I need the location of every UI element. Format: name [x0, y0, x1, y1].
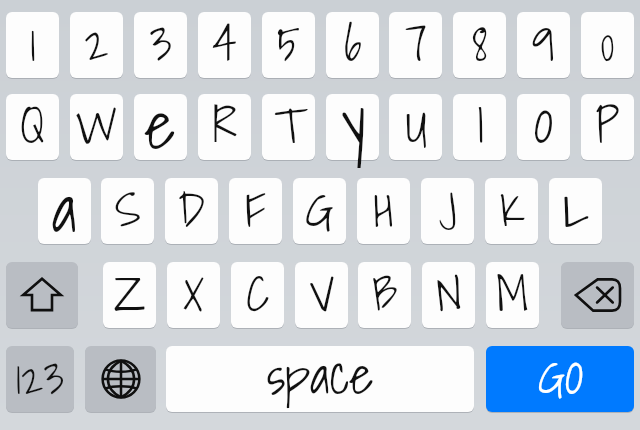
- button[interactable]: [6, 12, 59, 78]
- button[interactable]: [198, 94, 251, 160]
- staticText: R: [212, 87, 237, 164]
- button[interactable]: [326, 12, 379, 78]
- staticText: 5: [277, 5, 300, 82]
- button[interactable]: [70, 94, 123, 160]
- staticText: S: [115, 171, 141, 248]
- staticText: I: [476, 87, 484, 164]
- staticText: K: [499, 171, 525, 248]
- staticText: Q: [20, 87, 45, 164]
- button[interactable]: Delete: [561, 262, 634, 328]
- staticText: 1: [30, 5, 36, 82]
- button[interactable]: Shift: [6, 262, 78, 328]
- button[interactable]: [293, 178, 346, 244]
- button[interactable]: [134, 94, 187, 160]
- staticText: X: [182, 255, 205, 332]
- button[interactable]: [486, 346, 634, 412]
- staticText: F: [245, 171, 266, 248]
- button[interactable]: [422, 262, 475, 328]
- button[interactable]: [453, 12, 506, 78]
- button[interactable]: [549, 178, 602, 244]
- staticText: y: [341, 65, 365, 171]
- staticText: Z: [113, 255, 146, 332]
- button[interactable]: [167, 262, 220, 328]
- button[interactable]: [231, 262, 284, 328]
- button[interactable]: [38, 178, 91, 244]
- staticText: 2: [84, 5, 109, 82]
- staticText: 6: [344, 5, 362, 82]
- staticText: 123: [16, 342, 64, 413]
- staticText: 7: [405, 5, 427, 82]
- staticText: U: [405, 87, 427, 164]
- button[interactable]: [6, 94, 59, 160]
- staticText: 8: [472, 5, 488, 82]
- button[interactable]: [357, 178, 410, 244]
- button[interactable]: [517, 12, 570, 78]
- staticText: J: [439, 171, 457, 248]
- staticText: a: [52, 155, 77, 261]
- button[interactable]: [166, 346, 474, 412]
- button[interactable]: [295, 262, 348, 328]
- button[interactable]: Next keyboard: [85, 346, 156, 412]
- staticText: O: [534, 87, 553, 164]
- staticText: L: [563, 171, 589, 248]
- staticText: V: [309, 255, 335, 332]
- staticText: 9: [532, 5, 555, 82]
- staticText: 3: [149, 5, 172, 82]
- staticText: W: [75, 87, 118, 164]
- staticText: G: [305, 171, 334, 248]
- button[interactable]: [517, 94, 570, 160]
- staticText: B: [372, 255, 398, 332]
- staticText: 4: [212, 5, 237, 82]
- button[interactable]: [389, 12, 442, 78]
- staticText: e: [145, 71, 176, 177]
- button[interactable]: [103, 262, 156, 328]
- staticText: N: [436, 255, 462, 332]
- button[interactable]: [421, 178, 474, 244]
- button[interactable]: [6, 346, 74, 412]
- staticText: P: [595, 87, 620, 164]
- button[interactable]: [165, 178, 218, 244]
- button[interactable]: [70, 12, 123, 78]
- button[interactable]: [262, 94, 315, 160]
- button[interactable]: [581, 94, 634, 160]
- staticText: space: [266, 333, 374, 417]
- button[interactable]: [485, 178, 538, 244]
- staticText: H: [373, 171, 394, 248]
- button[interactable]: [262, 12, 315, 78]
- button[interactable]: [101, 178, 154, 244]
- button[interactable]: [453, 94, 506, 160]
- button[interactable]: [198, 12, 251, 78]
- button[interactable]: [134, 12, 187, 78]
- button[interactable]: [486, 262, 539, 328]
- button[interactable]: [358, 262, 411, 328]
- button[interactable]: [581, 12, 634, 78]
- staticText: GO: [538, 340, 583, 414]
- button[interactable]: [229, 178, 282, 244]
- staticText: T: [274, 87, 303, 164]
- staticText: C: [246, 255, 270, 332]
- button[interactable]: [389, 94, 442, 160]
- button[interactable]: [326, 94, 379, 160]
- staticText: D: [178, 171, 205, 248]
- staticText: M: [496, 255, 529, 332]
- staticText: 0: [600, 5, 615, 82]
